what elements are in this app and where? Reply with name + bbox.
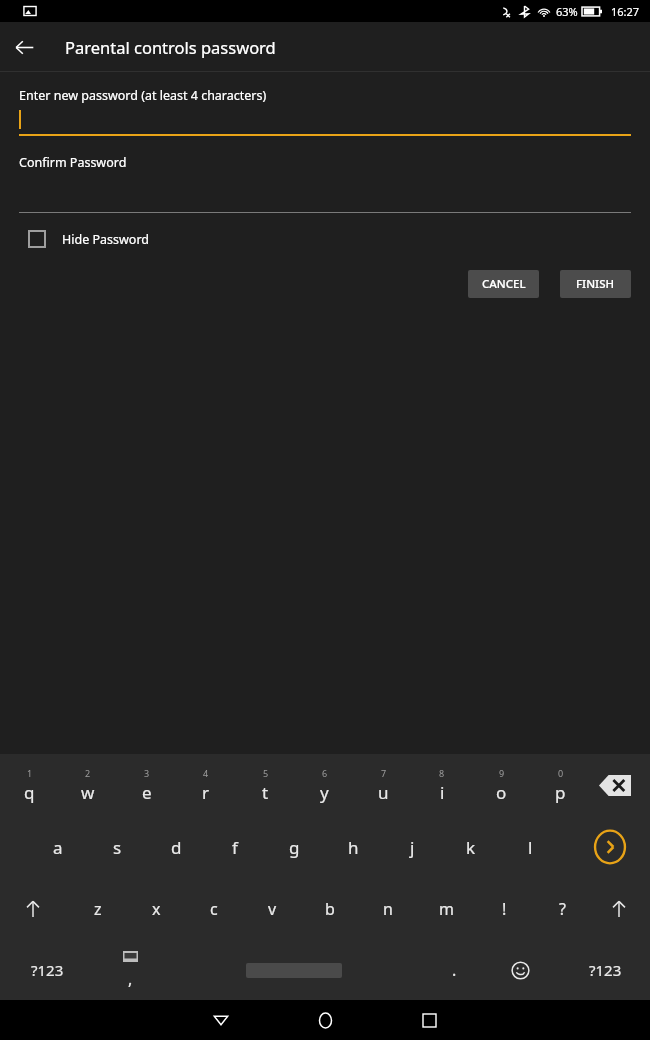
staticText: o (496, 781, 507, 804)
staticText: 2 (85, 767, 91, 779)
staticText: Enter new password (at least 4 character… (19, 87, 267, 104)
button[interactable]: Back (199, 1000, 243, 1040)
button[interactable]: 2 (59, 754, 117, 816)
button[interactable]: h (324, 816, 382, 878)
staticText: 1 (27, 767, 33, 779)
button[interactable]: 0 (531, 754, 589, 816)
staticText: s (113, 836, 122, 859)
staticText: w (81, 781, 95, 804)
button[interactable]: 8 (413, 754, 471, 816)
staticText: e (142, 781, 152, 804)
button[interactable]: ?123 (570, 940, 640, 1000)
button[interactable]: 9 (472, 754, 530, 816)
staticText: 0 (558, 767, 564, 779)
button[interactable]: . (428, 940, 480, 1000)
button[interactable]: c (188, 878, 240, 940)
button[interactable]: FINISH (560, 270, 631, 298)
button[interactable]: ! (478, 878, 530, 940)
staticText: , (128, 968, 133, 990)
staticText: CANCEL (482, 276, 526, 292)
staticText: 7 (381, 767, 387, 779)
staticText: ?123 (589, 960, 622, 980)
staticText: r (202, 781, 210, 804)
button[interactable]: n (362, 878, 414, 940)
staticText: Parental controls password (65, 36, 276, 58)
button[interactable]: Enter (590, 827, 630, 867)
staticText: v (268, 898, 277, 920)
staticText: 9 (499, 767, 505, 779)
staticText: y (320, 781, 329, 804)
button[interactable]: b (304, 878, 356, 940)
button[interactable]: l (501, 816, 559, 878)
staticText: m (439, 898, 454, 920)
staticText: x (152, 898, 161, 920)
staticText: 3 (144, 767, 150, 779)
button[interactable]: Shift (10, 878, 55, 940)
button[interactable]: 1 (0, 754, 58, 816)
staticText: . (452, 959, 457, 981)
button[interactable]: Shift (596, 878, 641, 940)
staticText: k (466, 836, 476, 859)
button[interactable]: s (88, 816, 146, 878)
button[interactable]: z (72, 878, 124, 940)
staticText: FINISH (576, 276, 615, 292)
button[interactable] (19, 104, 631, 136)
button[interactable]: Home (303, 1000, 347, 1040)
button[interactable]: 5 (236, 754, 294, 816)
button[interactable]: CANCEL (468, 270, 539, 298)
staticText: Hide Password (62, 231, 150, 248)
staticText: 63% (556, 4, 578, 19)
button[interactable]: f (206, 816, 264, 878)
staticText: n (383, 898, 393, 920)
staticText: b (325, 898, 335, 920)
staticText: c (210, 898, 218, 920)
staticText: 16:27 (611, 4, 640, 19)
staticText: j (410, 836, 415, 859)
button[interactable]: , (104, 940, 156, 1000)
button[interactable]: Backspace (593, 763, 637, 807)
staticText: l (528, 836, 533, 859)
button[interactable]: v (246, 878, 298, 940)
staticText: 6 (322, 767, 328, 779)
button[interactable]: ?123 (12, 940, 82, 1000)
staticText: g (289, 836, 300, 859)
button[interactable]: 3 (118, 754, 176, 816)
button[interactable]: 6 (295, 754, 353, 816)
button[interactable]: d (147, 816, 205, 878)
button[interactable]: Back (0, 23, 48, 71)
staticText: 8 (439, 767, 445, 779)
staticText: 5 (263, 767, 269, 779)
staticText: u (378, 781, 389, 804)
button[interactable]: 4 (177, 754, 235, 816)
staticText: t (262, 781, 269, 804)
staticText: ! (502, 898, 507, 920)
staticText: h (348, 836, 359, 859)
button[interactable] (19, 171, 631, 213)
staticText: z (94, 898, 102, 920)
button[interactable]: x (130, 878, 182, 940)
staticText: f (232, 836, 238, 859)
staticText: p (555, 781, 566, 804)
staticText: d (171, 836, 182, 859)
button[interactable]: k (442, 816, 500, 878)
button[interactable]: Hide Password (19, 230, 150, 248)
button[interactable]: Recent apps (407, 1000, 451, 1040)
button[interactable]: 7 (354, 754, 412, 816)
staticText: a (53, 836, 63, 859)
staticText: q (24, 781, 35, 804)
button[interactable]: Emoji (494, 940, 546, 1000)
staticText: i (440, 781, 445, 804)
staticText: 4 (203, 767, 209, 779)
staticText: ? (559, 898, 566, 920)
button[interactable]: ? (536, 878, 588, 940)
staticText: ?123 (31, 960, 64, 980)
button[interactable]: a (29, 816, 87, 878)
button[interactable]: g (265, 816, 323, 878)
button[interactable]: m (420, 878, 472, 940)
button[interactable]: j (383, 816, 441, 878)
staticText: Confirm Password (19, 154, 127, 171)
